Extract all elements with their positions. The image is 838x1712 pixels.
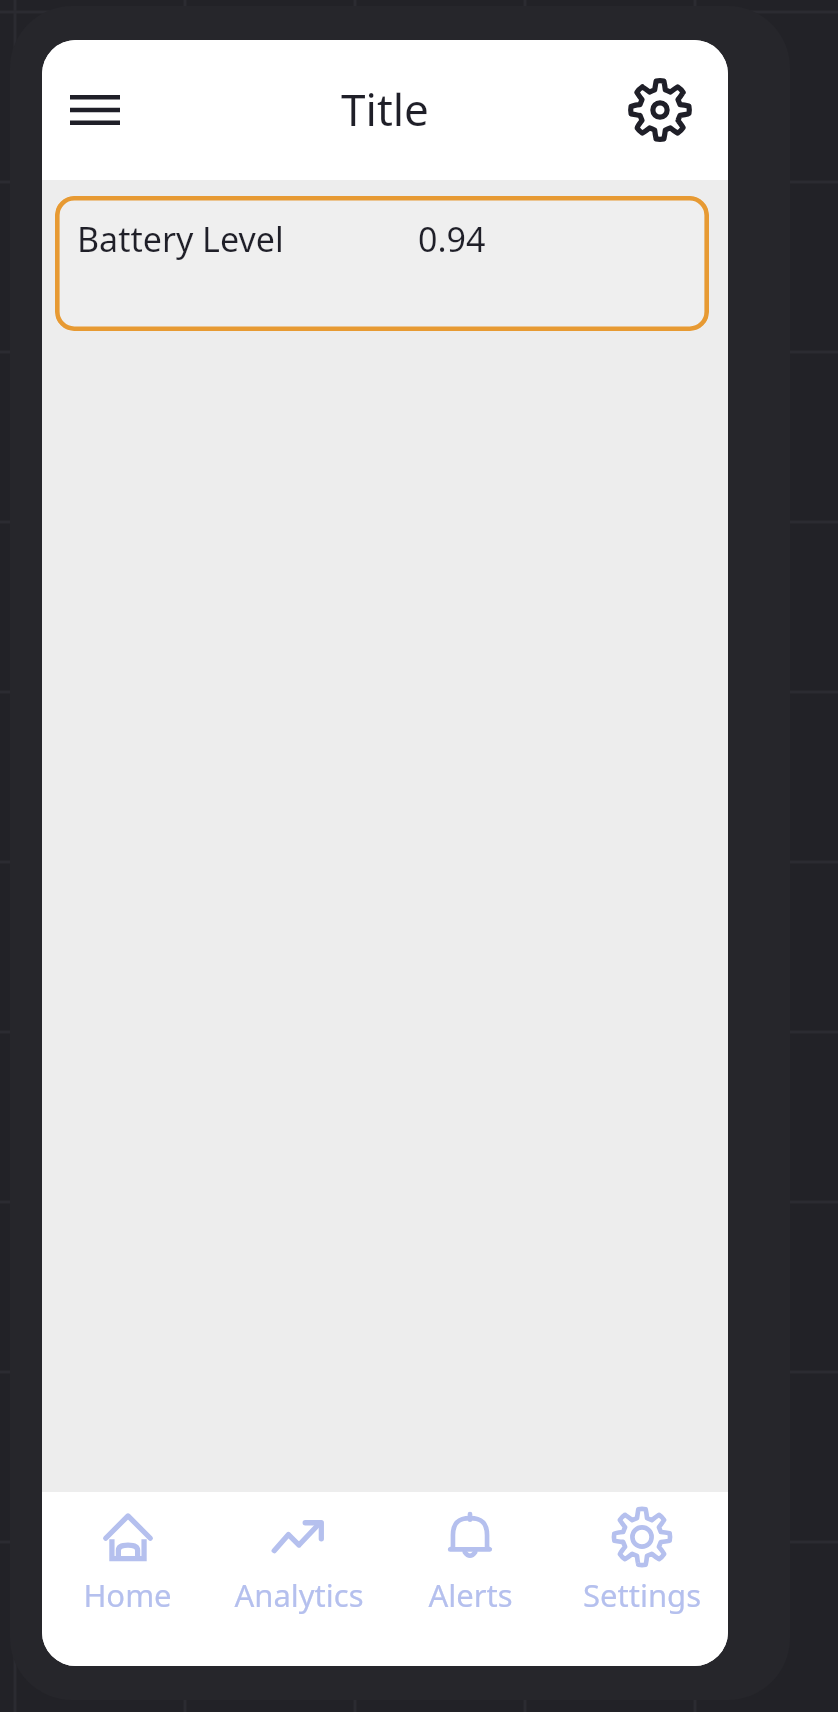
staticText: Analytics [234, 1574, 364, 1616]
button[interactable]: Settings [622, 72, 698, 148]
staticText: Home [83, 1574, 172, 1616]
button[interactable]: Settings [556, 1492, 728, 1666]
staticText: Battery Level [77, 216, 284, 262]
staticText: Settings [583, 1574, 701, 1616]
staticText: 0.94 [418, 216, 486, 262]
staticText: Title [341, 79, 429, 139]
button[interactable]: Analytics [213, 1492, 384, 1666]
staticText: Alerts [428, 1574, 513, 1616]
button[interactable]: Home [42, 1492, 213, 1666]
button[interactable]: Battery Level [55, 196, 709, 331]
button[interactable]: Menu [59, 74, 131, 146]
button[interactable]: Alerts [384, 1492, 556, 1666]
